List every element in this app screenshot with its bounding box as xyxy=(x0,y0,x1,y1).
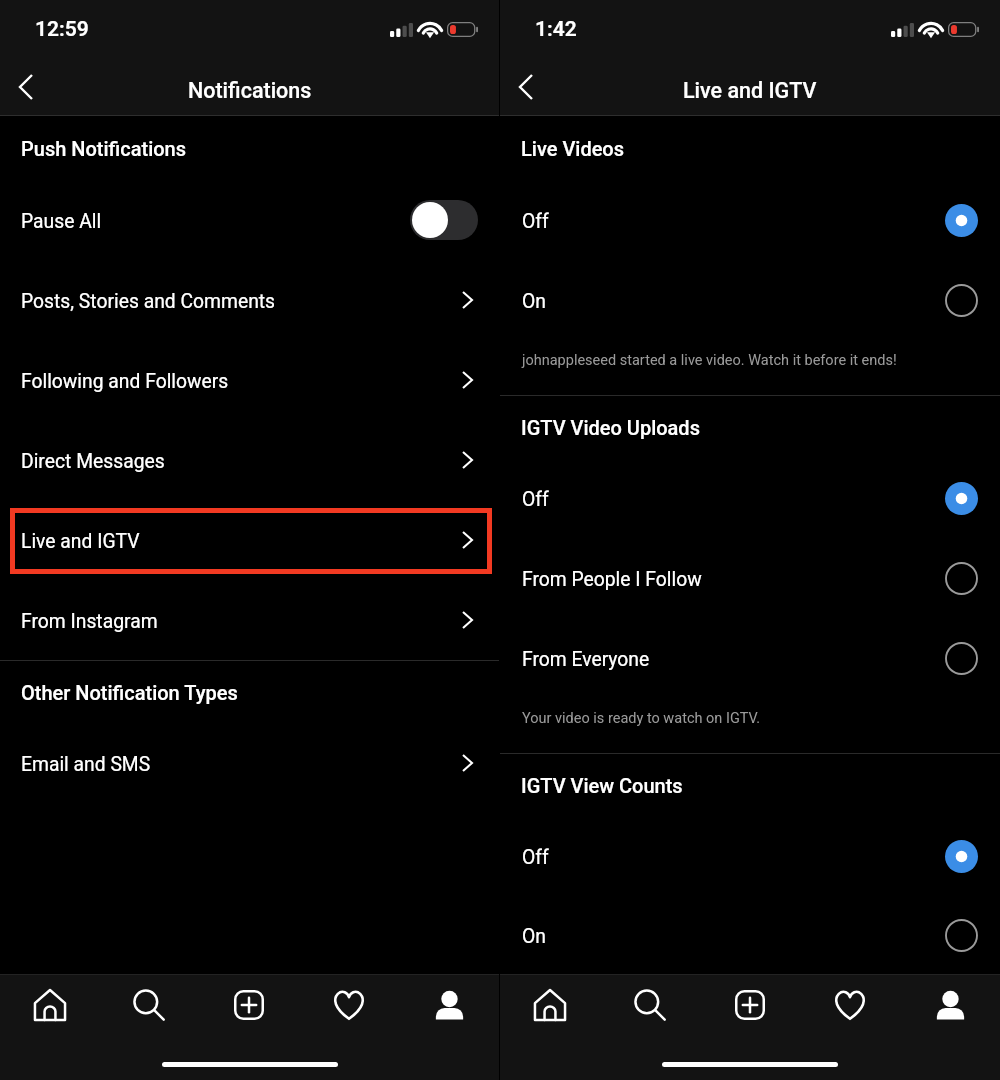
staticText: Notifications xyxy=(188,78,312,103)
staticText: Live and IGTV xyxy=(683,78,817,103)
button[interactable]: Create xyxy=(700,975,800,1035)
staticText: Live and IGTV xyxy=(21,530,463,553)
staticText: Off xyxy=(522,210,945,233)
staticText: From Everyone xyxy=(522,648,945,671)
staticText: IGTV View Counts xyxy=(521,774,683,797)
button[interactable]: Search xyxy=(600,975,700,1035)
button[interactable]: Direct Messages xyxy=(0,420,499,500)
button[interactable]: Profile xyxy=(399,975,499,1035)
staticText: From People I Follow xyxy=(522,568,945,591)
button[interactable]: Home xyxy=(0,975,99,1035)
button[interactable]: Profile xyxy=(900,975,1000,1035)
staticText: Off xyxy=(522,846,945,869)
staticText: Posts, Stories and Comments xyxy=(21,290,463,313)
button[interactable]: On xyxy=(500,260,1000,340)
staticText: Push Notifications xyxy=(21,137,186,160)
button[interactable]: From Instagram xyxy=(0,580,499,660)
button[interactable]: Activity xyxy=(299,975,399,1035)
staticText: IGTV Video Uploads xyxy=(521,416,700,439)
button[interactable]: Off xyxy=(500,458,1000,538)
staticText: Email and SMS xyxy=(21,753,463,776)
staticText: Following and Followers xyxy=(21,370,463,393)
staticText: Pause All xyxy=(21,210,410,233)
staticText: 1:42 xyxy=(535,17,577,42)
button[interactable]: From Everyone xyxy=(500,618,1000,698)
staticText: Direct Messages xyxy=(21,450,463,473)
button[interactable]: Off xyxy=(500,180,1000,260)
button[interactable]: Activity xyxy=(800,975,900,1035)
button[interactable]: Posts, Stories and Comments xyxy=(0,260,499,340)
staticText: Off xyxy=(522,488,945,511)
staticText: Live Videos xyxy=(521,137,625,160)
button[interactable]: On xyxy=(500,896,1000,974)
button[interactable]: Pause All xyxy=(0,180,499,260)
button[interactable]: From People I Follow xyxy=(500,538,1000,618)
button[interactable]: Following and Followers xyxy=(0,340,499,420)
staticText: On xyxy=(522,925,945,948)
button[interactable]: Home xyxy=(500,975,600,1035)
button[interactable]: Email and SMS xyxy=(0,723,499,803)
button[interactable]: Back xyxy=(3,64,49,110)
staticText: On xyxy=(522,290,945,313)
button[interactable]: Back xyxy=(503,64,549,110)
button[interactable]: Create xyxy=(199,975,299,1035)
staticText: 12:59 xyxy=(35,17,89,42)
button[interactable]: Search xyxy=(99,975,199,1035)
button[interactable]: Live and IGTV xyxy=(0,500,499,580)
button[interactable]: Off xyxy=(500,816,1000,896)
staticText: Other Notification Types xyxy=(21,681,238,704)
staticText: From Instagram xyxy=(21,610,463,633)
staticText: johnappleseed started a live video. Watc… xyxy=(522,352,897,369)
staticText: Your video is ready to watch on IGTV. xyxy=(522,710,760,727)
